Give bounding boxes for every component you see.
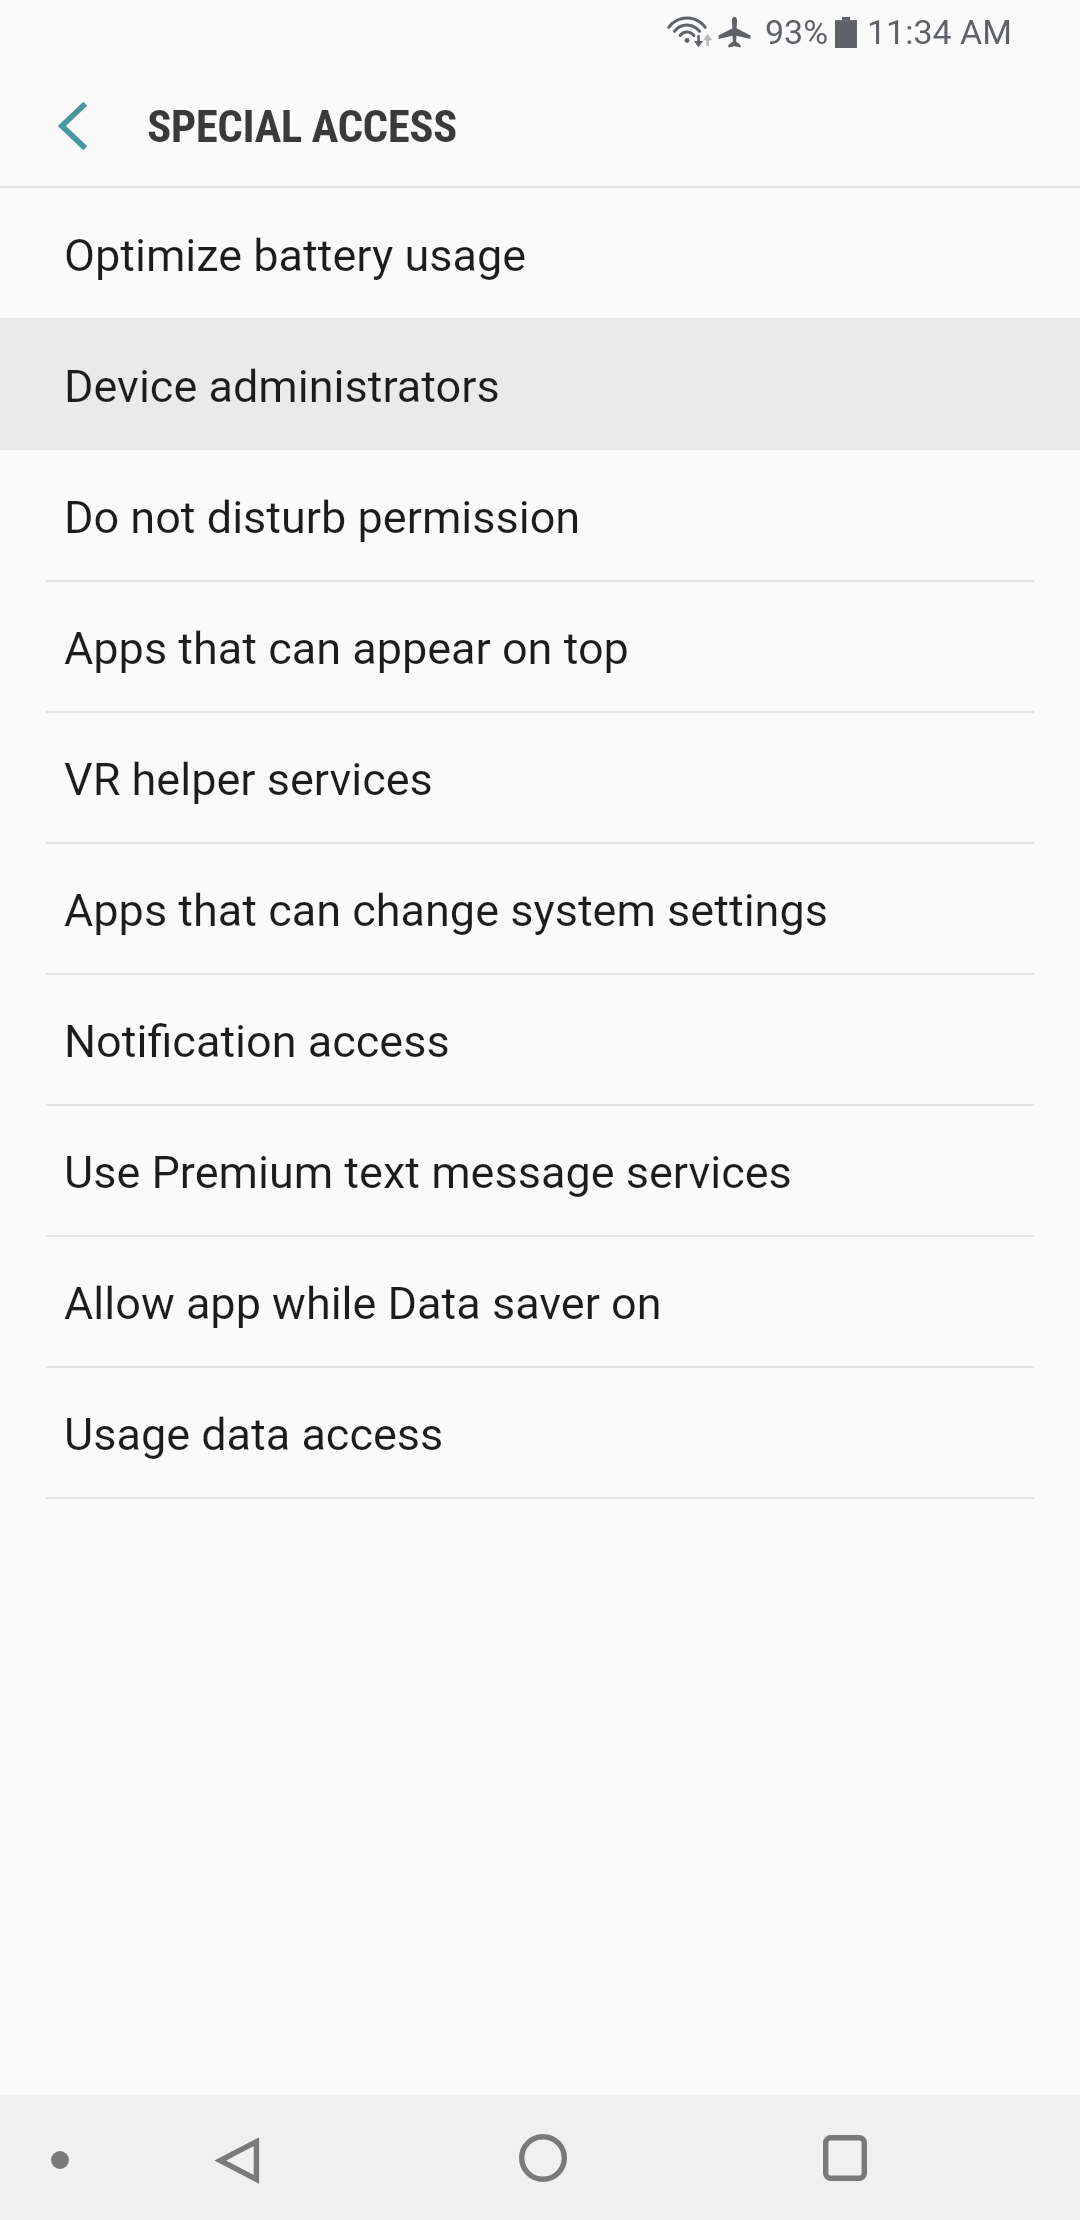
button[interactable]: Notification access [0, 974, 1080, 1105]
staticText: VR helper services [64, 753, 433, 806]
button[interactable]: Back [32, 86, 111, 165]
button[interactable]: Allow app while Data saver on [0, 1236, 1080, 1367]
button[interactable]: Do not disturb permission [0, 450, 1080, 581]
staticText: SPECIAL ACCESS [147, 100, 457, 153]
staticText: Use Premium text message services [64, 1146, 792, 1199]
button[interactable]: Recents [782, 2095, 907, 2220]
button[interactable]: Optimize battery usage [0, 188, 1080, 318]
staticText: Optimize battery usage [64, 229, 527, 282]
staticText: 11:34 AM [867, 12, 1012, 52]
staticText: Apps that can appear on top [64, 622, 629, 675]
staticText: Allow app while Data saver on [64, 1277, 662, 1330]
button[interactable]: Menu [22, 2122, 97, 2197]
button[interactable]: Usage data access [0, 1367, 1080, 1498]
button[interactable]: Device administrators [0, 318, 1080, 450]
button[interactable]: Use Premium text message services [0, 1105, 1080, 1236]
button[interactable]: Back [176, 2098, 301, 2220]
staticText: Usage data access [64, 1408, 444, 1461]
button[interactable]: VR helper services [0, 712, 1080, 843]
staticText: Device administrators [64, 360, 500, 413]
staticText: 93% [765, 12, 829, 52]
staticText: Apps that can change system settings [64, 884, 828, 937]
staticText: Do not disturb permission [64, 491, 581, 544]
button[interactable]: Apps that can change system settings [0, 843, 1080, 974]
button[interactable]: Apps that can appear on top [0, 581, 1080, 712]
button[interactable]: Home [480, 2095, 605, 2220]
staticText: Notification access [64, 1015, 450, 1068]
